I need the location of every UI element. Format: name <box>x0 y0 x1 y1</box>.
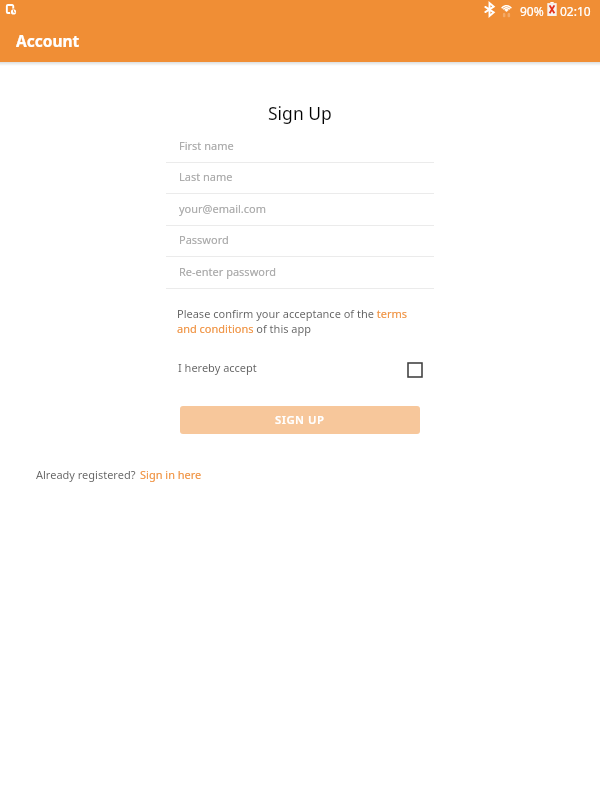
staticText: 90% <box>520 3 544 19</box>
staticText: your@email.com <box>179 201 266 216</box>
staticText: I hereby accept <box>178 360 257 375</box>
button[interactable]: SIGN UP <box>180 406 420 434</box>
staticText: Re-enter password <box>179 264 277 279</box>
button[interactable]: Last name <box>166 162 434 193</box>
button[interactable]: Sign in here <box>140 467 202 482</box>
staticText: Sign in here <box>140 467 202 482</box>
button[interactable]: Please confirm your acceptance of the te… <box>177 306 409 336</box>
staticText: Password <box>179 232 229 247</box>
button[interactable]: I hereby accept <box>166 355 434 383</box>
button[interactable]: Re-enter password <box>166 257 434 288</box>
staticText: Sign Up <box>268 101 332 125</box>
button[interactable]: I hereby accept, unchecked <box>408 363 422 377</box>
button[interactable]: First name <box>166 131 434 162</box>
staticText: 02:10 <box>560 3 591 19</box>
staticText: Please confirm your acceptance of the te… <box>177 306 409 336</box>
staticText: Already registered? <box>36 467 136 482</box>
button[interactable]: your@email.com <box>166 194 434 225</box>
staticText: First name <box>179 138 234 153</box>
staticText: Last name <box>179 169 233 184</box>
staticText: Account <box>16 30 80 51</box>
button[interactable]: Password <box>166 225 434 256</box>
staticText: SIGN UP <box>275 412 325 427</box>
